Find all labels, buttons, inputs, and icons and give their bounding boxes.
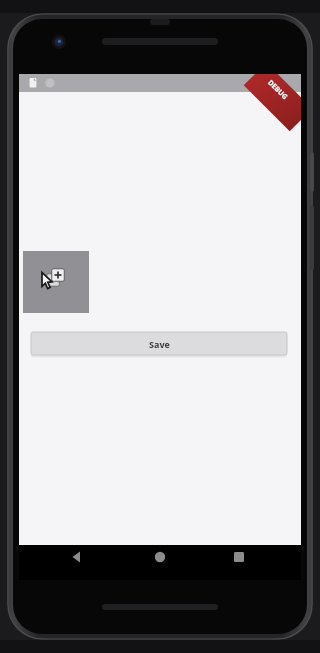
button[interactable]: Select image (23, 251, 89, 313)
button[interactable]: Save (31, 332, 287, 355)
button[interactable]: Home (138, 546, 182, 570)
button[interactable]: Recent apps (217, 546, 261, 570)
staticText: DEBUG (265, 78, 290, 102)
staticText: Save (149, 338, 170, 350)
button[interactable]: Back (56, 546, 100, 570)
